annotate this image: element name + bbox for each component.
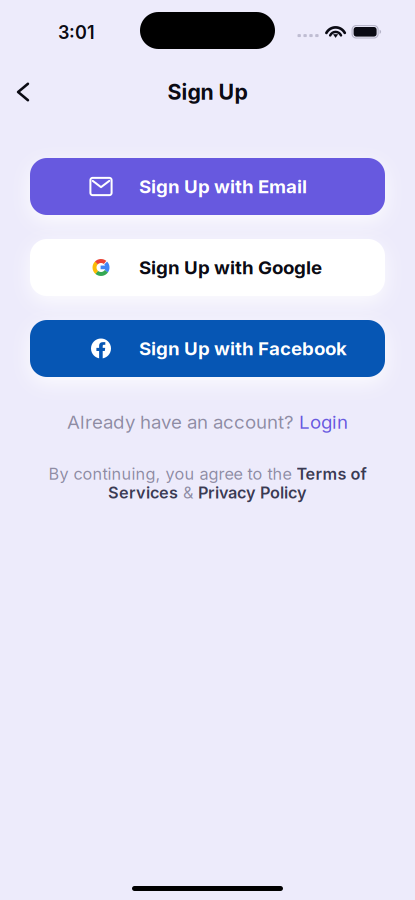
staticText: Already have an account? <box>67 411 299 433</box>
staticText: Terms of <box>296 464 366 484</box>
staticText: Sign Up <box>167 79 247 105</box>
button[interactable]: Sign Up with Email <box>30 158 385 215</box>
staticText: Privacy Policy <box>198 483 307 502</box>
button[interactable]: Sign Up with Google <box>30 239 385 296</box>
staticText: Sign Up with Email <box>139 175 307 198</box>
staticText: 3:01 <box>58 21 95 43</box>
staticText: Services <box>108 483 178 502</box>
staticText: Sign Up with Facebook <box>139 337 347 360</box>
button[interactable]: Back <box>1 70 45 114</box>
staticText: Sign Up with Google <box>139 256 322 279</box>
button[interactable]: Sign Up with Facebook <box>30 320 385 377</box>
staticText: Login <box>299 411 348 433</box>
button[interactable]: Already have an account? <box>0 405 415 439</box>
staticText: & <box>178 483 198 502</box>
staticText: By continuing, you agree to the <box>48 464 296 484</box>
